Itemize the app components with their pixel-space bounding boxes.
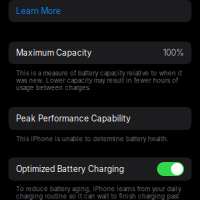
- button[interactable]: Maximum Capacity: [8, 41, 191, 64]
- staticText: This iPhone is unable to determine batte…: [16, 135, 169, 143]
- staticText: Maximum Capacity: [16, 48, 92, 58]
- staticText: This is a measure of battery capacity re…: [16, 69, 182, 91]
- staticText: To reduce battery aging, iPhone learns f…: [16, 185, 181, 200]
- button[interactable]: Learn More: [8, 0, 191, 22]
- staticText: Peak Performance Capability: [16, 114, 131, 123]
- staticText: 100%: [163, 48, 184, 58]
- staticText: Learn More: [16, 6, 61, 16]
- staticText: Optimized Battery Charging: [16, 164, 124, 174]
- button[interactable]: Optimized Battery Charging: [8, 157, 191, 181]
- button[interactable]: Peak Performance Capability: [8, 107, 191, 130]
